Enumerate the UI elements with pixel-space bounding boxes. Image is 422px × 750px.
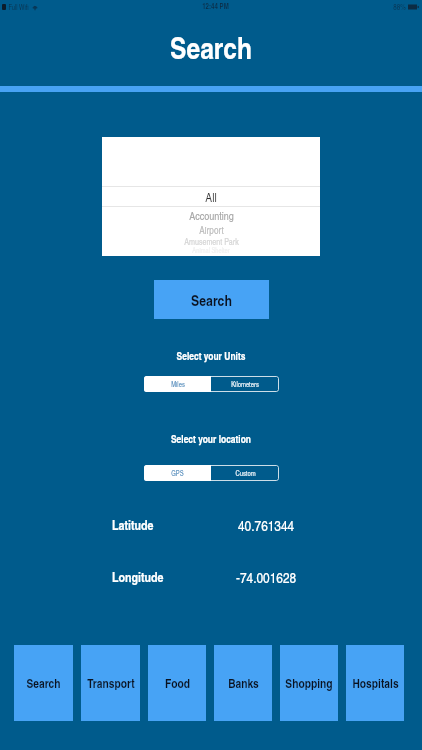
staticText: Search [170, 26, 252, 68]
staticText: Full Wifi [8, 2, 29, 12]
button[interactable]: Transport [81, 645, 140, 721]
staticText: Animal Shelter [192, 245, 230, 253]
staticText: Accounting [189, 208, 234, 223]
staticText: Select your Units [0, 349, 422, 364]
staticText: Longitude [112, 568, 164, 586]
staticText: Amusement Park [184, 236, 239, 245]
staticText: All [205, 188, 217, 205]
staticText: Banks [228, 674, 259, 692]
staticText: Transport [87, 674, 135, 692]
staticText: Search [191, 289, 232, 310]
staticText: 12:44 PM [202, 1, 229, 12]
staticText: Hospitals [352, 674, 399, 692]
staticText: 88% [393, 2, 406, 12]
staticText: Kilometers [231, 379, 259, 389]
button[interactable]: Custom [211, 465, 279, 481]
button[interactable]: Banks [214, 645, 272, 721]
staticText: Food [165, 674, 190, 692]
button[interactable]: GPS [144, 465, 211, 481]
staticText: Miles [171, 379, 185, 389]
staticText: Shopping [285, 674, 333, 692]
button[interactable]: Kilometers [211, 376, 279, 392]
staticText: Custom [235, 468, 256, 478]
button[interactable]: Shopping [280, 645, 338, 721]
button[interactable]: Hospitals [346, 645, 404, 721]
staticText: GPS [171, 468, 184, 478]
staticText: -74.001628 [236, 567, 297, 585]
staticText: 40.761344 [238, 515, 295, 533]
staticText: Select your location [0, 432, 422, 447]
staticText: Search [26, 674, 61, 692]
button[interactable]: Search [14, 645, 73, 721]
staticText: Airport [199, 223, 224, 236]
button[interactable]: Search [154, 280, 269, 319]
button[interactable]: Miles [144, 376, 211, 392]
button[interactable]: Back to previous app [2, 4, 6, 10]
staticText: Latitude [112, 516, 154, 534]
button[interactable]: Food [148, 645, 206, 721]
